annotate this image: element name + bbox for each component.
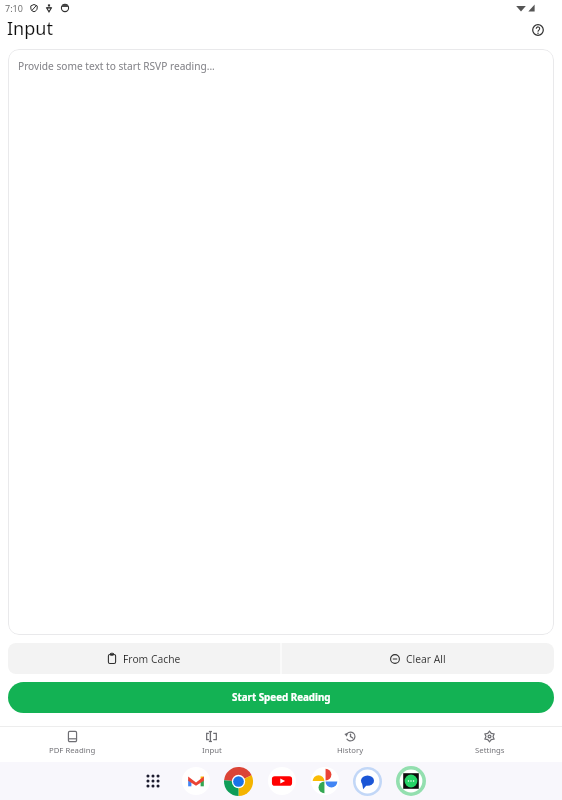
staticText: From Cache — [123, 652, 181, 666]
button[interactable]: Input — [142, 727, 281, 762]
staticText: Start Speed Reading — [232, 691, 331, 704]
button[interactable]: WhatsApp — [389, 762, 432, 800]
button[interactable]: All apps — [131, 762, 174, 800]
button[interactable]: Settings — [420, 727, 559, 762]
button[interactable]: Messages — [346, 762, 389, 800]
staticText: Settings — [475, 745, 505, 756]
button[interactable]: YouTube — [260, 762, 303, 800]
button[interactable]: Clear All — [282, 643, 554, 674]
button[interactable]: PDF Reading — [3, 727, 142, 762]
button[interactable]: Start Speed Reading — [8, 682, 554, 713]
button[interactable]: Help — [527, 19, 549, 41]
staticText: Clear All — [406, 652, 446, 666]
staticText: 7:10 — [5, 2, 23, 14]
staticText: Provide some text to start RSVP reading.… — [18, 59, 215, 73]
button[interactable]: Provide some text to start RSVP reading.… — [8, 49, 554, 635]
staticText: History — [337, 745, 364, 756]
staticText: Input — [202, 745, 222, 756]
button[interactable]: Photos — [303, 762, 346, 800]
staticText: Input — [7, 16, 53, 41]
button[interactable]: History — [281, 727, 420, 762]
button[interactable]: Chrome — [217, 762, 260, 800]
staticText: PDF Reading — [49, 745, 96, 756]
button[interactable]: From Cache — [8, 643, 280, 674]
button[interactable]: Gmail — [174, 762, 217, 800]
